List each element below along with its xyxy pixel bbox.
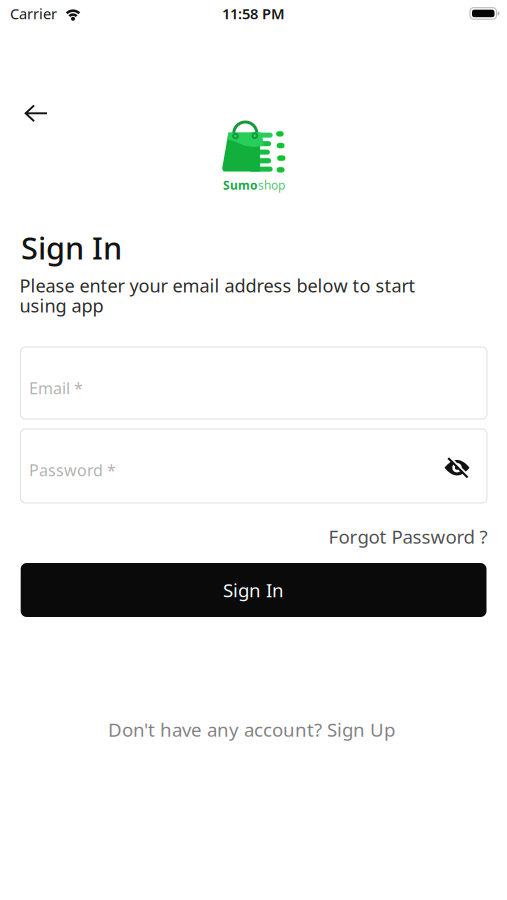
staticText: Don't have any account? Sign Up	[108, 717, 395, 742]
staticText: Password *	[29, 459, 116, 481]
button[interactable]: Back	[14, 94, 57, 132]
button[interactable]: Password	[20, 429, 487, 503]
button[interactable]: Sign In	[21, 563, 486, 617]
staticText: Forgot Password ?	[328, 524, 487, 549]
staticText: 11:58 PM	[222, 4, 285, 23]
staticText: Please enter your email address below to…	[19, 273, 415, 298]
staticText: Sign In	[21, 227, 122, 268]
staticText: using app	[19, 293, 103, 318]
staticText: Sign In	[223, 578, 284, 602]
button[interactable]: Email	[20, 347, 487, 419]
staticText: Email *	[29, 377, 83, 399]
button[interactable]: Don't have any account? Sign Up	[108, 717, 395, 742]
staticText: Sumo	[223, 177, 258, 193]
button[interactable]: Show password	[438, 451, 476, 484]
button[interactable]: Forgot Password ?	[328, 524, 487, 549]
staticText: shop	[258, 177, 285, 193]
staticText: Carrier	[10, 4, 57, 23]
